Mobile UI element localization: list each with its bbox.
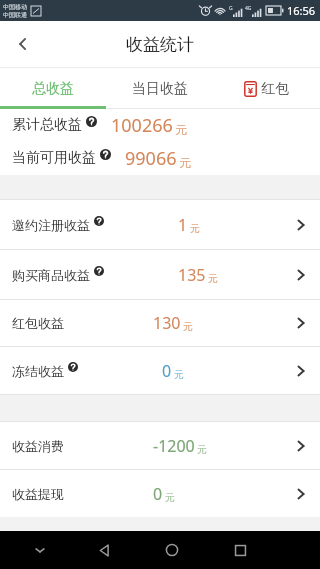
staticText: 元 [174,368,184,381]
button[interactable]: 累计总收益 [0,109,320,141]
staticText: 1 [178,214,188,236]
button[interactable]: Recent apps [206,531,274,569]
staticText: 收益提现 [12,486,64,502]
staticText: 0 [153,483,163,505]
staticText: 当前可用收益 [12,149,96,167]
staticText: 收益统计 [126,34,194,55]
staticText: 中国移动 [3,3,27,11]
staticText: 元 [208,272,218,285]
staticText: 元 [197,443,207,456]
staticText: 当日收益 [132,80,188,98]
button[interactable]: Hide navigation bar [10,531,70,569]
staticText: 99066 [125,146,177,171]
staticText: 邀约注册收益 [12,217,90,233]
staticText: 元 [175,122,187,137]
staticText: 100266 [111,113,173,138]
staticText: 元 [190,222,200,235]
staticText: 4G [245,5,252,12]
staticText: 累计总收益 [12,116,82,134]
button[interactable]: 收益消费 [0,422,320,469]
staticText: 红包收益 [12,315,64,331]
staticText: 收益消费 [12,438,64,454]
button[interactable]: 邀约注册收益 [0,200,320,249]
staticText: G [229,5,233,12]
staticText: 总收益 [32,80,74,98]
staticText: 16:56 [287,3,316,18]
button[interactable]: 红包 [213,68,320,109]
staticText: 130 [153,312,181,334]
button[interactable]: Back [0,21,46,67]
button[interactable]: 总收益 [0,68,106,109]
staticText: 冻结收益 [12,363,64,379]
staticText: 元 [179,155,191,170]
button[interactable]: Back [70,531,138,569]
staticText: -1200 [153,435,195,457]
staticText: 135 [178,264,206,286]
staticText: 0 [162,360,172,382]
button[interactable]: 当日收益 [106,68,213,109]
button[interactable]: 购买商品收益 [0,250,320,299]
button[interactable]: 收益提现 [0,470,320,517]
staticText: 中国联通 [3,11,27,19]
staticText: 购买商品收益 [12,267,90,283]
button[interactable]: 当前可用收益 [0,141,320,175]
staticText: 元 [183,320,193,333]
staticText: 红包 [261,80,289,98]
button[interactable]: 冻结收益 [0,347,320,394]
button[interactable]: 红包收益 [0,300,320,346]
staticText: 元 [165,491,175,504]
button[interactable]: Home [138,531,206,569]
